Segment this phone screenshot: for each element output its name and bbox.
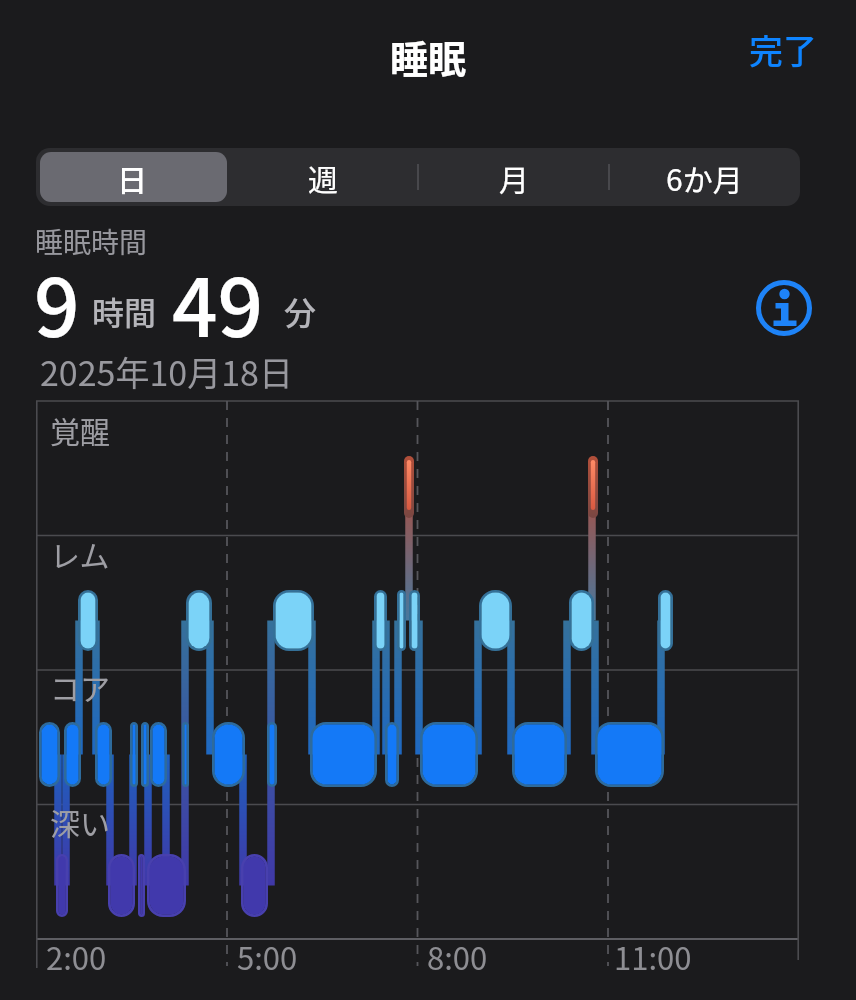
staticText: 11:00 [614, 934, 692, 979]
staticText: 週 [308, 156, 338, 199]
button[interactable]: 週 [227, 148, 418, 206]
button[interactable]: 6か月 [609, 148, 800, 206]
staticText: 2025年10月18日 [40, 347, 293, 396]
staticText: 9 [34, 244, 80, 360]
staticText: 8:00 [427, 934, 488, 979]
staticText: 覚醒 [50, 408, 110, 451]
staticText: コア [50, 665, 110, 708]
button[interactable] [752, 276, 816, 340]
staticText: 日 [117, 156, 147, 199]
staticText: 分 [284, 288, 317, 334]
staticText: 月 [499, 156, 529, 199]
staticText: 49 [172, 244, 264, 360]
button[interactable]: 日 [36, 148, 227, 206]
staticText: 睡眠時間 [35, 221, 148, 262]
button[interactable]: 月 [418, 148, 609, 206]
button[interactable]: 完了 [738, 22, 828, 76]
staticText: 完了 [749, 25, 817, 74]
staticText: 6か月 [666, 156, 743, 199]
staticText: 深い [50, 800, 110, 843]
staticText: 5:00 [237, 934, 298, 979]
staticText: 時間 [92, 288, 157, 334]
staticText: レム [50, 532, 110, 575]
staticText: 2:00 [46, 934, 107, 979]
staticText: 睡眠 [390, 29, 467, 84]
